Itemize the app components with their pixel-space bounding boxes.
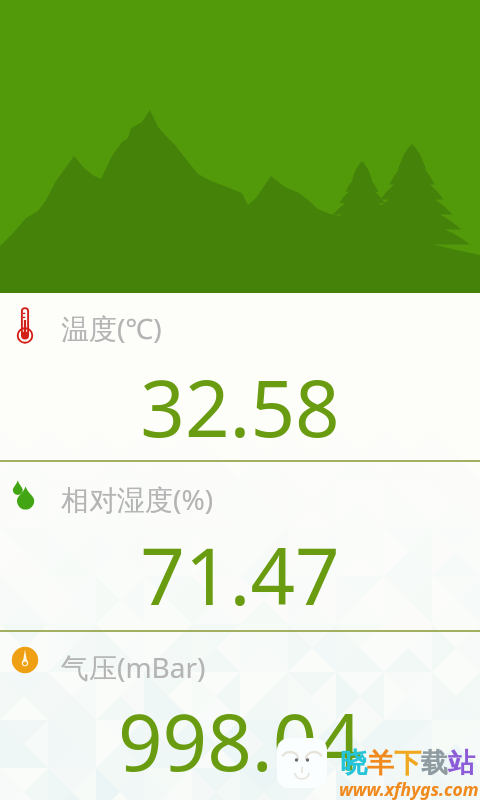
button[interactable]: 气压(mBar): [0, 632, 480, 800]
staticText: 相对湿度(%): [61, 480, 214, 518]
staticText: 下: [394, 746, 421, 780]
staticText: 气压(mBar): [61, 648, 206, 686]
button[interactable]: 相对湿度(%): [0, 462, 480, 630]
staticText: 站: [448, 746, 475, 780]
staticText: 71.47: [0, 522, 480, 628]
staticText: 羊: [367, 746, 394, 780]
staticText: 晓: [340, 746, 367, 780]
staticText: 温度(℃): [61, 309, 162, 347]
button[interactable]: 温度(℃): [0, 293, 480, 460]
staticText: www.xfhygs.com: [339, 777, 479, 800]
staticText: 32.58: [0, 354, 480, 460]
staticText: 998.04: [0, 688, 480, 794]
staticText: 载: [421, 746, 448, 780]
